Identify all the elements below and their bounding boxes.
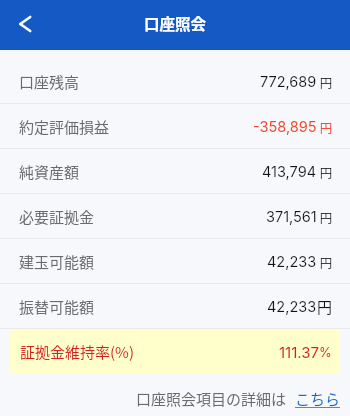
- staticText: 円: [317, 163, 333, 181]
- staticText: 必要証拠金: [19, 206, 95, 228]
- button[interactable]: 純資産額: [0, 149, 350, 194]
- button[interactable]: こちら: [295, 388, 341, 410]
- staticText: 413,794: [262, 163, 317, 181]
- staticText: 円: [317, 296, 333, 318]
- staticText: 42,233: [267, 253, 317, 271]
- staticText: 111.37: [279, 343, 319, 361]
- staticText: 証拠金維持率(%): [20, 341, 134, 363]
- staticText: 振替可能額: [19, 296, 95, 318]
- button[interactable]: 振替可能額: [0, 284, 350, 329]
- staticText: 42,233: [267, 298, 317, 316]
- staticText: 円: [317, 118, 333, 136]
- staticText: 純資産額: [19, 161, 80, 183]
- button[interactable]: 建玉可能額: [0, 239, 350, 284]
- staticText: 円: [317, 208, 333, 226]
- button[interactable]: 証拠金維持率(%): [10, 330, 340, 374]
- staticText: 口座照会項目の詳細は: [136, 388, 287, 410]
- staticText: 建玉可能額: [19, 251, 95, 273]
- staticText: -358,895: [253, 118, 317, 136]
- button[interactable]: 口座残高: [0, 59, 350, 104]
- staticText: 円: [317, 73, 333, 91]
- staticText: %: [319, 344, 332, 360]
- staticText: 371,561: [266, 208, 317, 226]
- staticText: 口座照会: [144, 12, 207, 34]
- staticText: 約定評価損益: [19, 116, 110, 138]
- button[interactable]: 約定評価損益: [0, 104, 350, 149]
- button[interactable]: Back: [0, 2, 46, 48]
- staticText: 円: [317, 253, 333, 271]
- staticText: 772,689: [260, 73, 317, 91]
- button[interactable]: 必要証拠金: [0, 194, 350, 239]
- staticText: 口座残高: [19, 71, 80, 93]
